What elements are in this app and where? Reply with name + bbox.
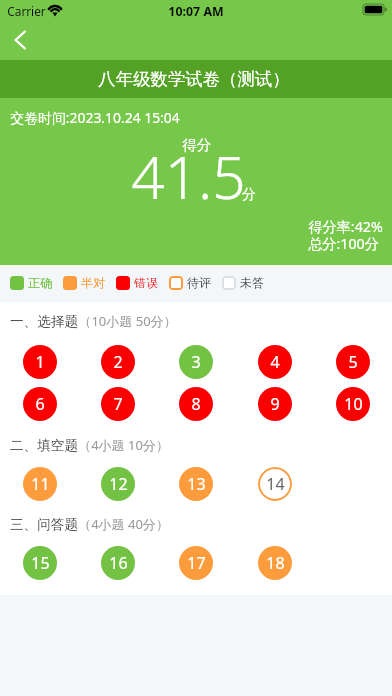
staticText: 分 (242, 186, 256, 204)
staticText: 一、选择题 (10, 313, 78, 330)
button[interactable]: 6 (23, 387, 57, 421)
staticText: 1 (35, 351, 45, 373)
staticText: （4小题 40分） (78, 515, 169, 533)
staticText: 八年级数学试卷（测试） (98, 68, 290, 90)
staticText: 17 (187, 552, 206, 574)
button[interactable]: 正确 (10, 275, 52, 290)
staticText: 8 (191, 393, 201, 415)
staticText: 10:07 AM (168, 3, 224, 20)
staticText: 未答 (240, 275, 264, 290)
button[interactable]: 未答 (222, 275, 264, 290)
staticText: 12 (109, 473, 128, 495)
staticText: 得分率:42% (308, 217, 383, 236)
staticText: 半对 (81, 275, 105, 290)
button[interactable]: 16 (101, 546, 135, 580)
button[interactable]: 11 (23, 467, 57, 501)
staticText: 41.5 (131, 136, 246, 216)
button[interactable]: 错误 (116, 275, 158, 290)
staticText: 2 (113, 351, 123, 373)
staticText: 6 (35, 393, 45, 415)
staticText: 5 (348, 351, 358, 373)
button[interactable]: 半对 (63, 275, 105, 290)
staticText: 13 (187, 473, 206, 495)
staticText: 总分:100分 (308, 234, 379, 253)
button[interactable]: 18 (258, 546, 292, 580)
button[interactable]: 10 (336, 387, 370, 421)
staticText: 待评 (187, 275, 211, 290)
button[interactable]: 9 (258, 387, 292, 421)
staticText: 3 (191, 351, 201, 373)
button[interactable]: 3 (179, 345, 213, 379)
button[interactable]: 5 (336, 345, 370, 379)
button[interactable]: 8 (179, 387, 213, 421)
staticText: Carrier (7, 3, 46, 19)
button[interactable]: Back (2, 22, 38, 58)
button[interactable]: 17 (179, 546, 213, 580)
staticText: 18 (266, 552, 285, 574)
staticText: 交卷时间:2023.10.24 15:04 (10, 108, 180, 127)
button[interactable]: 13 (179, 467, 213, 501)
staticText: （4小题 10分） (78, 436, 169, 454)
button[interactable]: 4 (258, 345, 292, 379)
staticText: 二、填空题 (10, 437, 78, 454)
button[interactable]: 14 (258, 467, 292, 501)
staticText: 三、问答题 (10, 516, 78, 533)
button[interactable]: 2 (101, 345, 135, 379)
staticText: 16 (109, 552, 128, 574)
staticText: 正确 (28, 275, 52, 290)
staticText: （10小题 50分） (78, 312, 177, 330)
button[interactable]: 1 (23, 345, 57, 379)
staticText: 9 (270, 393, 280, 415)
staticText: 4 (270, 351, 280, 373)
staticText: 错误 (134, 275, 158, 290)
staticText: 7 (113, 393, 123, 415)
button[interactable]: 15 (23, 546, 57, 580)
staticText: 11 (31, 473, 50, 495)
staticText: 14 (266, 473, 285, 495)
button[interactable]: 7 (101, 387, 135, 421)
button[interactable]: 待评 (169, 275, 211, 290)
staticText: 得分 (182, 136, 211, 154)
button[interactable]: 12 (101, 467, 135, 501)
staticText: 10 (344, 393, 363, 415)
staticText: 15 (31, 552, 50, 574)
